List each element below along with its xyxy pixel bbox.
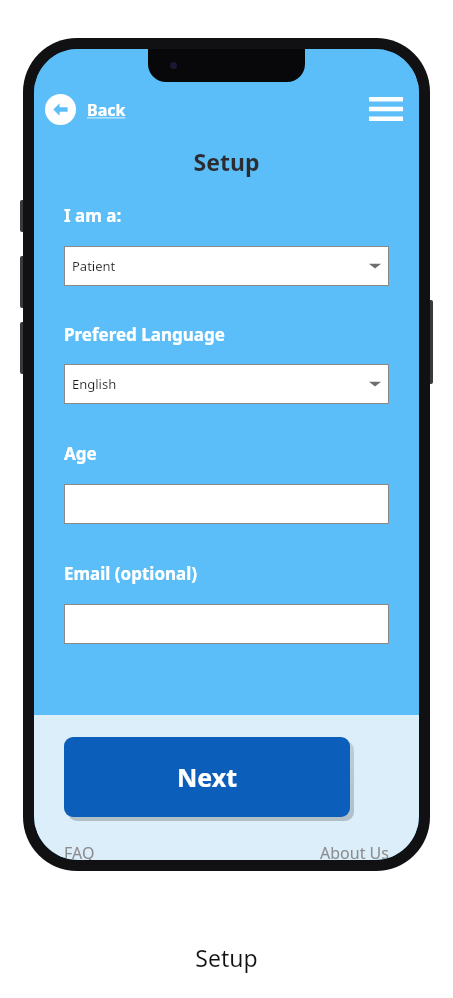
- button[interactable]: English: [64, 364, 389, 404]
- staticText: Setup: [34, 146, 419, 177]
- staticText: Age: [64, 442, 97, 465]
- staticText: Email (optional): [64, 562, 198, 585]
- button[interactable]: [64, 604, 389, 644]
- staticText: Patient: [72, 257, 369, 275]
- button[interactable]: About Us: [320, 842, 389, 860]
- button[interactable]: Next: [64, 737, 350, 817]
- staticText: Setup: [0, 942, 453, 973]
- staticText: English: [72, 375, 369, 393]
- button[interactable]: FAQ: [64, 842, 95, 860]
- button[interactable]: Patient: [64, 246, 389, 286]
- staticText: Next: [177, 760, 238, 794]
- button[interactable]: [64, 484, 389, 524]
- staticText: Back: [87, 99, 126, 121]
- other: Back: [45, 94, 76, 125]
- button[interactable]: Menu: [364, 91, 408, 127]
- staticText: I am a:: [64, 204, 122, 227]
- staticText: Prefered Language: [64, 323, 225, 346]
- button[interactable]: Back: [45, 94, 126, 125]
